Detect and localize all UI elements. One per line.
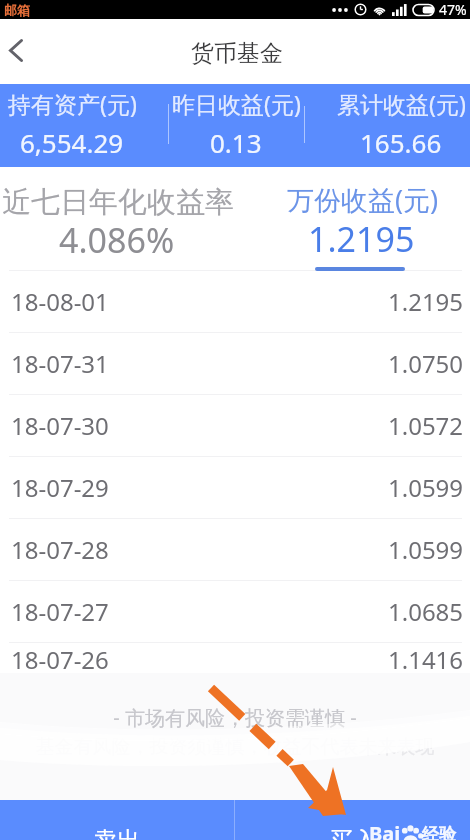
button[interactable]: 近七日年化收益率 xyxy=(0,167,236,270)
staticText: - 市场有风险，投资需谨慎 - xyxy=(0,704,470,731)
button[interactable]: 买入 xyxy=(235,800,470,840)
staticText: 1.0572 xyxy=(388,409,464,442)
button[interactable]: 18-07-30 xyxy=(0,395,470,456)
staticText: 近七日年化收益率 xyxy=(2,184,234,221)
staticText: 1.0599 xyxy=(388,533,464,566)
staticText: 货币基金 xyxy=(191,39,283,68)
staticText: 卖出 xyxy=(93,826,141,840)
staticText: 累计收益(元) xyxy=(337,88,466,119)
staticText: 18-08-01 xyxy=(11,285,109,318)
staticText: 1.1416 xyxy=(388,643,464,673)
staticText: 1.2195 xyxy=(388,285,464,318)
button[interactable]: 18-07-31 xyxy=(0,333,470,394)
staticText: 18-07-26 xyxy=(11,643,109,673)
staticText: 邮箱 xyxy=(4,2,30,17)
button[interactable]: 卖出 xyxy=(0,800,234,840)
staticText: 1.2195 xyxy=(308,216,415,262)
staticText: 基金有风险，投资须谨慎，收益不代表未来表现 xyxy=(0,735,470,759)
staticText: 18-07-28 xyxy=(11,533,109,566)
staticText: 165.66 xyxy=(360,125,442,160)
staticText: 18-07-27 xyxy=(11,595,109,628)
button[interactable]: Back xyxy=(0,23,44,81)
staticText: 4.086% xyxy=(59,217,175,263)
staticText: 18-07-30 xyxy=(11,409,109,442)
button[interactable]: 18-07-28 xyxy=(0,519,470,580)
staticText: 47% xyxy=(439,0,467,19)
staticText: 持有资产(元) xyxy=(8,88,137,119)
button[interactable]: 持有资产(元) xyxy=(0,84,144,167)
staticText: 买入 xyxy=(329,826,377,840)
staticText: 昨日收益(元) xyxy=(172,88,301,119)
button[interactable]: 昨日收益(元) xyxy=(164,84,308,167)
staticText: 0.13 xyxy=(210,125,262,160)
button[interactable]: 18-08-01 xyxy=(0,271,470,332)
staticText: Bai xyxy=(369,820,401,840)
staticText: 6,554.29 xyxy=(20,125,124,160)
staticText: 万份收益(元) xyxy=(287,181,439,218)
staticText: 经验 xyxy=(422,824,456,840)
button[interactable]: 万份收益(元) xyxy=(242,167,470,270)
staticText: 1.0599 xyxy=(388,471,464,504)
button[interactable]: 累计收益(元) xyxy=(329,84,470,167)
staticText: 18-07-31 xyxy=(11,347,109,380)
button[interactable]: 18-07-26 xyxy=(0,643,470,673)
button[interactable]: 18-07-27 xyxy=(0,581,470,642)
staticText: 1.0685 xyxy=(388,595,464,628)
staticText: 1.0750 xyxy=(388,347,464,380)
staticText: 18-07-29 xyxy=(11,471,109,504)
button[interactable]: 18-07-29 xyxy=(0,457,470,518)
